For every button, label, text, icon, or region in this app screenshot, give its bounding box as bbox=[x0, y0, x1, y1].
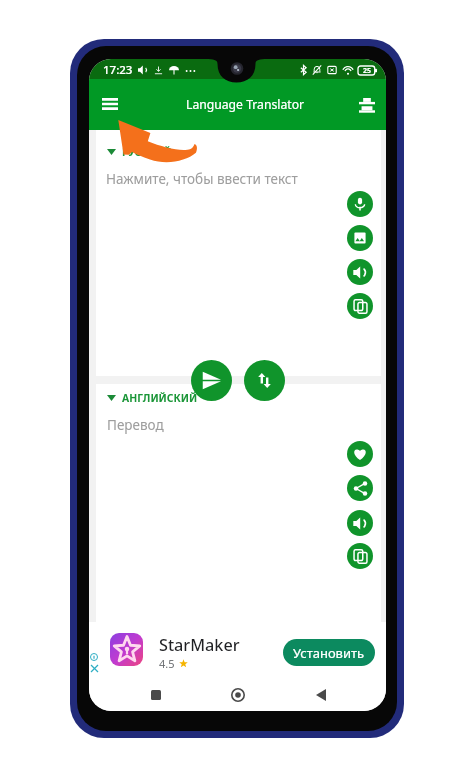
button[interactable]: Menu bbox=[91, 85, 129, 123]
staticText: 25 bbox=[363, 66, 372, 75]
button[interactable]: Home bbox=[221, 678, 254, 711]
staticText: РУССКИЙ bbox=[122, 145, 172, 159]
button[interactable]: Share bbox=[347, 475, 373, 501]
button[interactable]: Translate bbox=[191, 360, 232, 401]
button[interactable]: АНГЛИЙСКИЙ bbox=[105, 389, 200, 407]
button[interactable]: Pick image bbox=[347, 225, 373, 251]
button[interactable]: Speak bbox=[347, 510, 373, 536]
staticText: Перевод bbox=[107, 416, 164, 434]
staticText: 17:23 bbox=[103, 62, 133, 78]
button[interactable]: Favorite bbox=[347, 441, 373, 467]
button[interactable]: Save offline bbox=[350, 88, 384, 122]
staticText: StarMaker bbox=[159, 634, 240, 656]
button[interactable]: Swap languages bbox=[244, 360, 285, 401]
staticText: 4.5 bbox=[159, 656, 175, 671]
button[interactable]: Установить bbox=[283, 639, 375, 666]
button[interactable]: Speak bbox=[347, 259, 373, 285]
button[interactable]: Back bbox=[304, 678, 337, 711]
button[interactable]: РУССКИЙ bbox=[105, 143, 174, 161]
button[interactable]: Voice input bbox=[347, 191, 373, 217]
staticText: АНГЛИЙСКИЙ bbox=[122, 391, 198, 405]
staticText: Установить bbox=[293, 644, 365, 662]
button[interactable]: Copy bbox=[347, 543, 373, 569]
button[interactable]: Recents bbox=[139, 678, 172, 711]
staticText: Нажмите, чтобы ввести текст bbox=[106, 170, 298, 188]
button[interactable]: Copy bbox=[347, 293, 373, 319]
staticText: Language Translator bbox=[186, 96, 305, 113]
